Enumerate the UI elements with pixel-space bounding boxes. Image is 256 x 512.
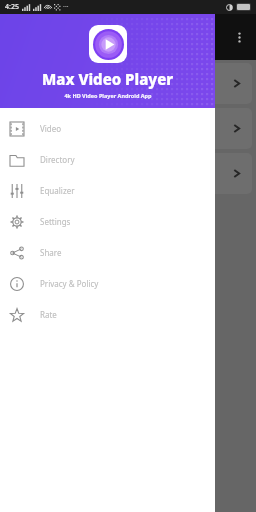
staticText: Settings: [40, 216, 71, 227]
button[interactable]: [4, 108, 252, 149]
staticText: Equalizer: [40, 185, 75, 196]
button[interactable]: More options: [229, 27, 249, 47]
button[interactable]: [4, 63, 252, 104]
staticText: ···: [63, 2, 69, 12]
staticText: Video: [40, 123, 62, 134]
staticText: Share: [40, 247, 62, 258]
staticText: Rate: [40, 309, 57, 320]
staticText: 4:25: [5, 2, 19, 12]
staticText: Privacy & Policy: [40, 278, 99, 289]
button[interactable]: Rate: [0, 299, 215, 330]
button[interactable]: Settings: [0, 206, 215, 237]
button[interactable]: Privacy & Policy: [0, 268, 215, 299]
button[interactable]: [4, 153, 252, 194]
button[interactable]: Directory: [0, 144, 215, 175]
staticText: 4k HD Video Player Android App: [64, 92, 152, 99]
staticText: Directory: [40, 154, 75, 165]
button[interactable]: Video: [0, 113, 215, 144]
staticText: Max Video Player: [42, 69, 174, 89]
button[interactable]: Share: [0, 237, 215, 268]
button[interactable]: Equalizer: [0, 175, 215, 206]
